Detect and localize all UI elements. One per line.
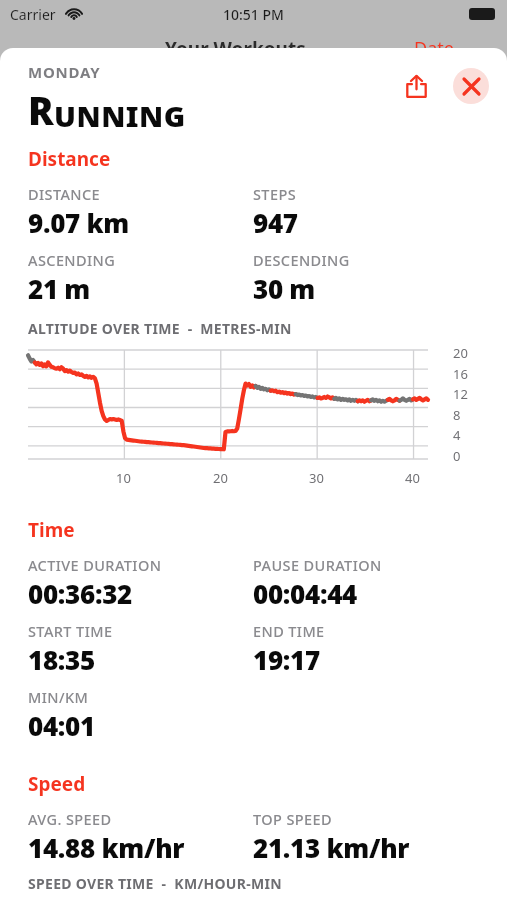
button[interactable]: Close: [453, 68, 489, 104]
staticText: 30: [309, 469, 324, 487]
staticText: 21.13 km/hr: [253, 830, 410, 865]
staticText: 00:04:44: [253, 576, 358, 611]
staticText: ASCENDING: [28, 250, 116, 270]
staticText: 4: [453, 426, 461, 444]
staticText: 19:17: [253, 642, 320, 677]
staticText: R: [28, 84, 54, 136]
staticText: 10:51 PM: [223, 5, 284, 24]
staticText: Carrier: [10, 5, 56, 24]
staticText: MIN/KM: [28, 687, 89, 707]
staticText: 16: [453, 365, 468, 383]
staticText: 12: [453, 385, 468, 403]
staticText: 00:36:32: [28, 576, 133, 611]
staticText: PAUSE DURATION: [253, 555, 382, 575]
staticText: 04:01: [28, 708, 95, 743]
staticText: 14.88 km/hr: [28, 830, 185, 865]
staticText: DESCENDING: [253, 250, 350, 270]
staticText: Speed: [28, 771, 86, 797]
staticText: 20: [213, 469, 228, 487]
staticText: 10: [116, 469, 131, 487]
staticText: 9.07 km: [28, 205, 130, 240]
staticText: Distance: [28, 146, 111, 172]
staticText: START TIME: [28, 621, 113, 641]
staticText: TOP SPEED: [253, 809, 333, 829]
staticText: DISTANCE: [28, 184, 101, 204]
staticText: 947: [253, 205, 298, 240]
staticText: 40: [405, 469, 420, 487]
staticText: END TIME: [253, 621, 325, 641]
staticText: 20: [453, 344, 468, 362]
button[interactable]: Share: [396, 66, 436, 106]
staticText: UNNING: [54, 96, 186, 135]
staticText: 8: [453, 406, 461, 424]
staticText: ACTIVE DURATION: [28, 555, 162, 575]
staticText: STEPS: [253, 184, 297, 204]
staticText: 21 m: [28, 271, 91, 306]
staticText: 30 m: [253, 271, 316, 306]
staticText: 0: [453, 447, 461, 465]
staticText: 18:35: [28, 642, 95, 677]
staticText: AVG. SPEED: [28, 809, 112, 829]
staticText: MONDAY: [28, 62, 101, 82]
staticText: SPEED OVER TIME - KM/HOUR-MIN: [28, 874, 282, 893]
staticText: Date: [414, 36, 454, 61]
staticText: Your Workouts: [165, 36, 306, 62]
staticText: ALTITUDE OVER TIME - METRES-MIN: [28, 319, 292, 338]
staticText: Time: [28, 517, 75, 543]
